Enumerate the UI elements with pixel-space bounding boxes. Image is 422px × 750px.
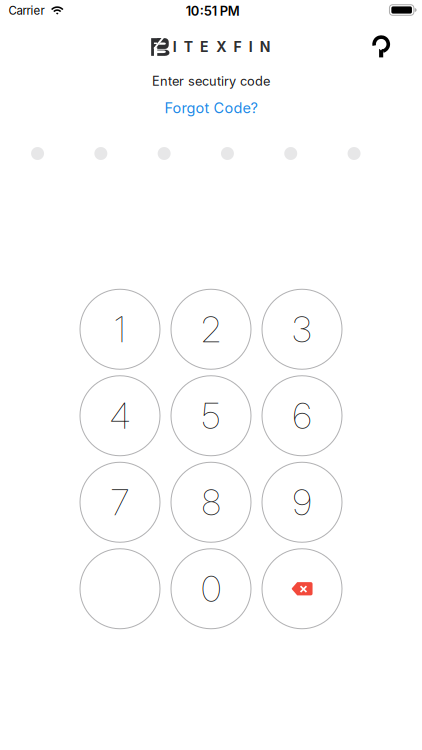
staticText: 4 [109, 394, 130, 438]
button[interactable]: 8 [171, 462, 251, 542]
staticText: Carrier [9, 4, 45, 17]
button[interactable]: 9 [262, 462, 342, 542]
staticText: 2 [201, 307, 221, 351]
button[interactable]: 2 [171, 289, 251, 369]
staticText: 6 [292, 394, 311, 438]
staticText: 5 [201, 394, 220, 438]
button[interactable]: Help [359, 25, 403, 69]
staticText: I [173, 38, 177, 55]
button[interactable]: 5 [171, 376, 251, 456]
button[interactable]: Forgot Code? [136, 92, 286, 124]
staticText: T [184, 38, 193, 55]
button[interactable]: 3 [262, 289, 342, 369]
staticText: 7 [110, 480, 129, 524]
staticText: Forgot Code? [164, 99, 257, 117]
button[interactable]: 4 [80, 376, 160, 456]
staticText: 1 [114, 307, 126, 351]
staticText: 0 [201, 567, 221, 611]
staticText: I [249, 38, 253, 55]
button[interactable]: 7 [80, 462, 160, 542]
staticText: F [233, 38, 241, 55]
staticText: Enter secutiry code [152, 73, 270, 89]
staticText: N [260, 38, 271, 55]
button[interactable]: Delete [262, 549, 342, 629]
staticText: 8 [201, 480, 220, 524]
staticText: X [216, 38, 226, 55]
staticText: 3 [292, 307, 312, 351]
staticText: 9 [292, 480, 311, 524]
staticText: 10:51 PM [186, 3, 240, 19]
button[interactable]: 1 [80, 289, 160, 369]
button[interactable]: 0 [171, 549, 251, 629]
button[interactable]: 6 [262, 376, 342, 456]
staticText: E [200, 38, 209, 55]
